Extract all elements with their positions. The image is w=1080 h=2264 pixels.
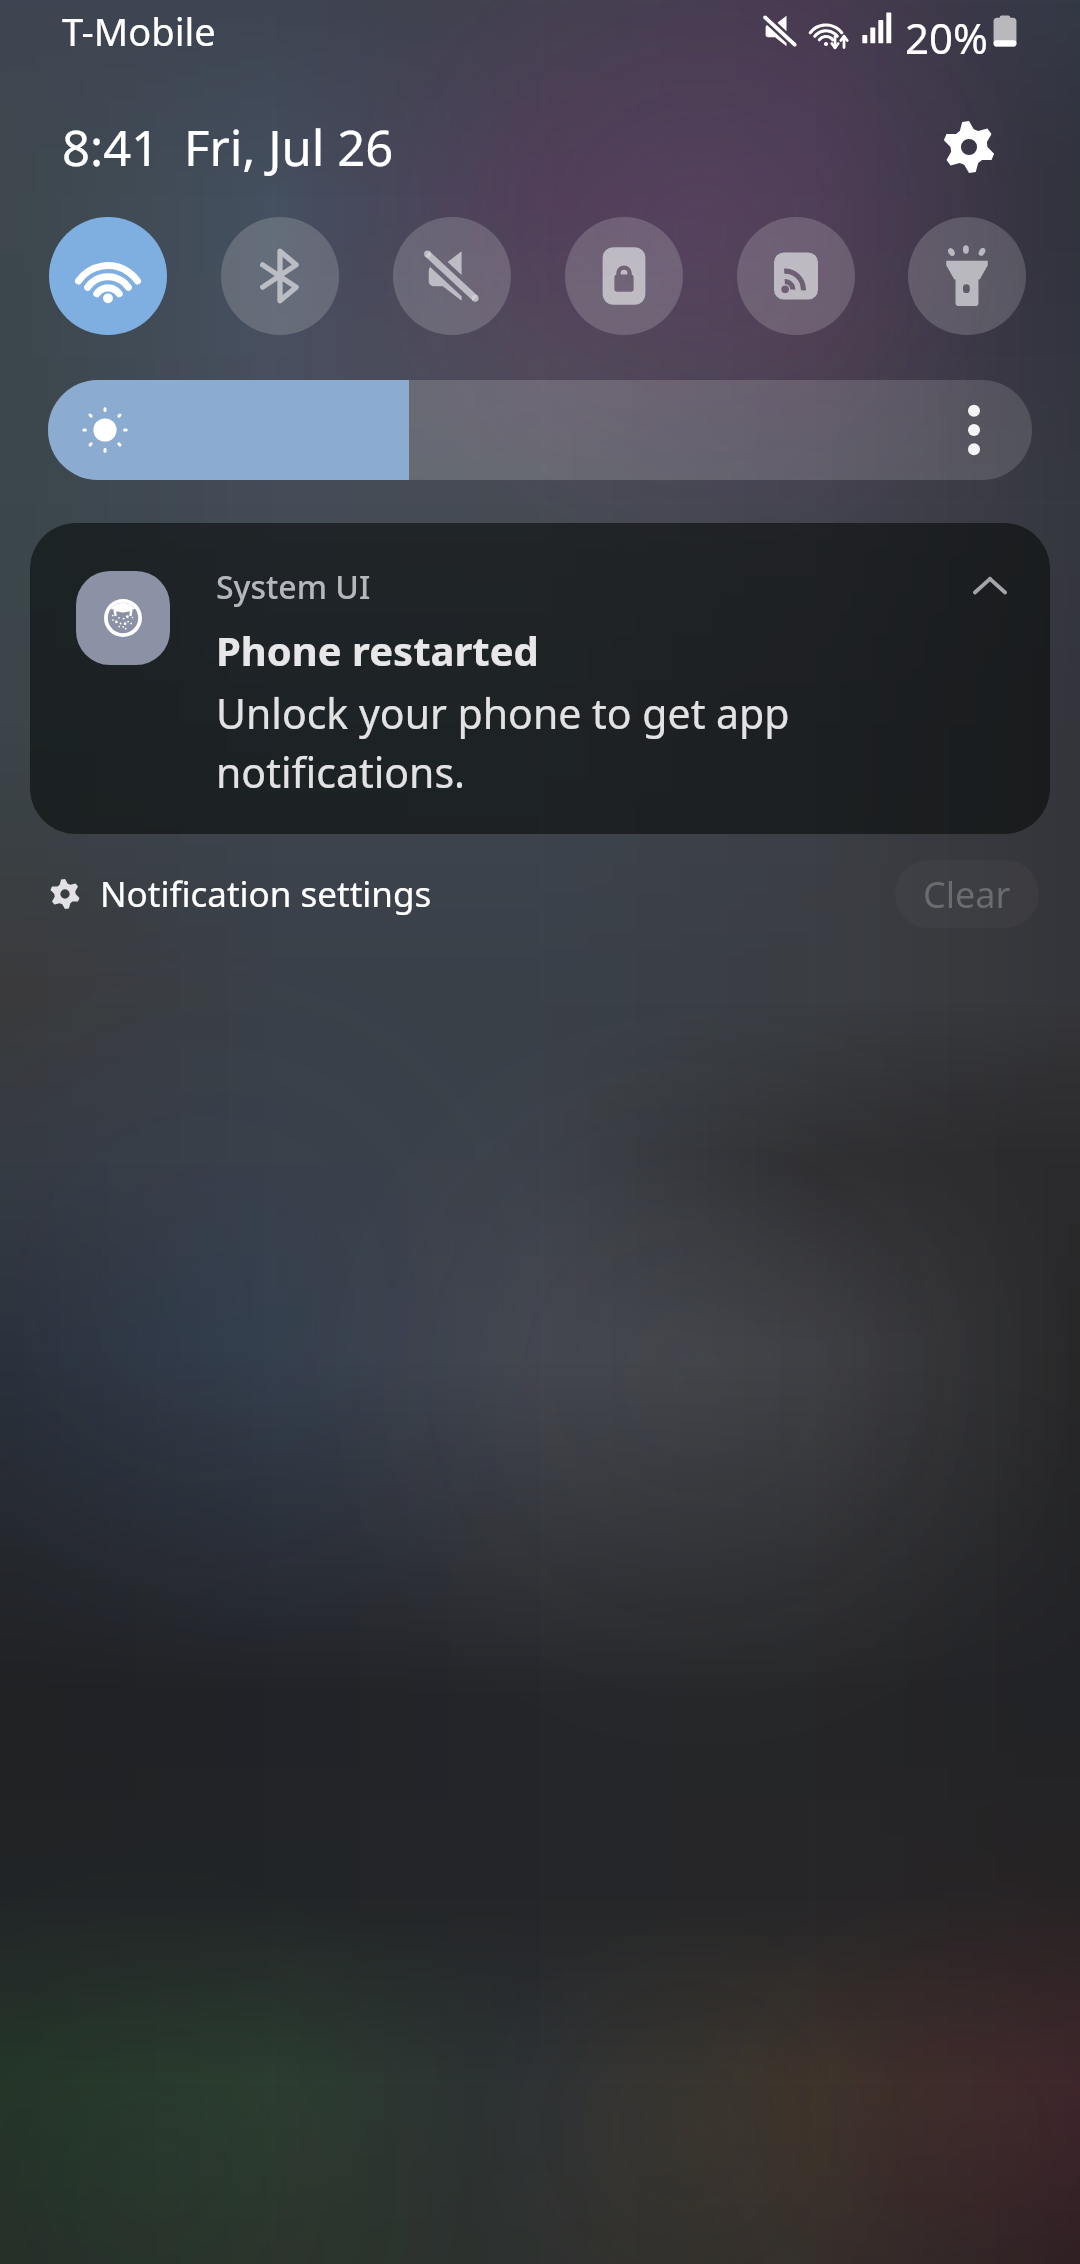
button[interactable]: Collapse notification [952,548,1028,624]
button[interactable]: Mute [393,217,511,335]
staticText: Phone restarted [216,623,539,677]
staticText: Fri, Jul 26 [184,114,394,181]
staticText: System UI [216,565,371,609]
button[interactable]: Clear [895,860,1039,928]
staticText: Notification settings [100,870,432,918]
button[interactable]: Auto rotate lock [565,217,683,335]
staticText: Unlock your phone to get app notificatio… [216,685,816,800]
button[interactable]: More brightness options [938,394,1010,466]
staticText: Clear [923,870,1011,919]
button[interactable]: Bluetooth [221,217,339,335]
button[interactable]: Flashlight [908,217,1026,335]
button[interactable]: Smart View [737,217,855,335]
button[interactable]: Notification settings [36,854,446,934]
staticText: 8:41 [62,114,160,181]
staticText: 20% [905,9,988,66]
button[interactable]: System UI [30,523,1050,834]
button[interactable]: Brightness [48,380,1032,480]
button[interactable]: Wi-Fi [49,217,167,335]
button[interactable]: Settings [930,108,1008,186]
staticText: T-Mobile [62,5,216,57]
